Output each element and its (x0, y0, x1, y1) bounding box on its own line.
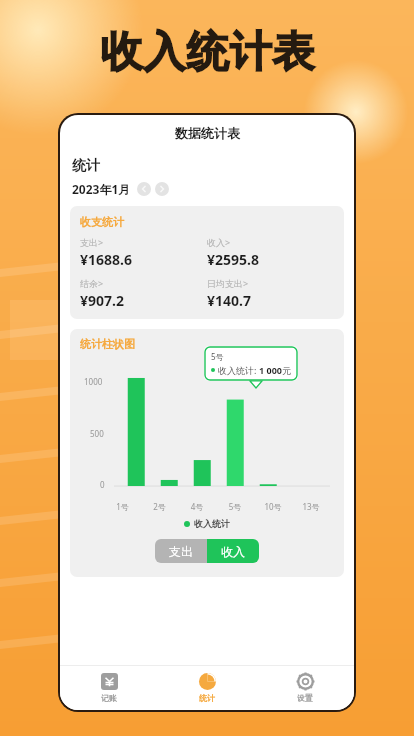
staticText: 收入统计表 (100, 26, 315, 79)
button[interactable]: 记账 (60, 666, 158, 710)
staticText: 统计 (199, 693, 215, 703)
button[interactable]: 支出 (155, 539, 207, 563)
staticText: 10号 (254, 501, 292, 512)
button[interactable]: 设置 (256, 666, 354, 710)
staticText: 记账 (101, 693, 117, 703)
staticText: 元 (282, 365, 291, 376)
staticText: ¥907.2 (80, 291, 124, 310)
button[interactable]: Next month (155, 182, 169, 196)
staticText: 收入统计 (194, 518, 230, 529)
staticText: 2023年1月 (72, 181, 131, 197)
staticText: 2号 (141, 501, 178, 512)
button[interactable]: 收支统计 (70, 206, 344, 319)
staticText: 收入 (221, 544, 245, 559)
staticText: 日均支出> (207, 277, 249, 289)
staticText: 数据统计表 (175, 125, 240, 141)
staticText: 5号 (216, 501, 254, 512)
staticText: 13号 (292, 501, 330, 512)
button[interactable]: 收入 (207, 539, 259, 563)
staticText: ¥1688.6 (80, 250, 132, 269)
staticText: 4号 (178, 501, 216, 512)
button[interactable]: Previous month (137, 182, 151, 196)
staticText: 收入> (207, 236, 231, 248)
staticText: 结余> (80, 277, 104, 289)
staticText: ¥140.7 (207, 291, 251, 310)
staticText: 1号 (104, 501, 141, 512)
staticText: 1000 (84, 376, 103, 387)
staticText: 收入统计: (218, 364, 259, 376)
staticText: ¥2595.8 (207, 250, 259, 269)
staticText: 收支统计 (80, 215, 124, 229)
staticText: 0 (100, 479, 105, 490)
staticText: 统计 (72, 157, 100, 175)
staticText: 5号 (211, 351, 224, 362)
button[interactable]: 统计 (158, 666, 256, 710)
staticText: 1 000 (259, 364, 282, 376)
staticText: 设置 (297, 693, 313, 703)
staticText: 统计柱状图 (80, 337, 135, 351)
staticText: 支出> (80, 236, 104, 248)
staticText: 支出 (169, 544, 193, 559)
staticText: 500 (90, 428, 104, 439)
